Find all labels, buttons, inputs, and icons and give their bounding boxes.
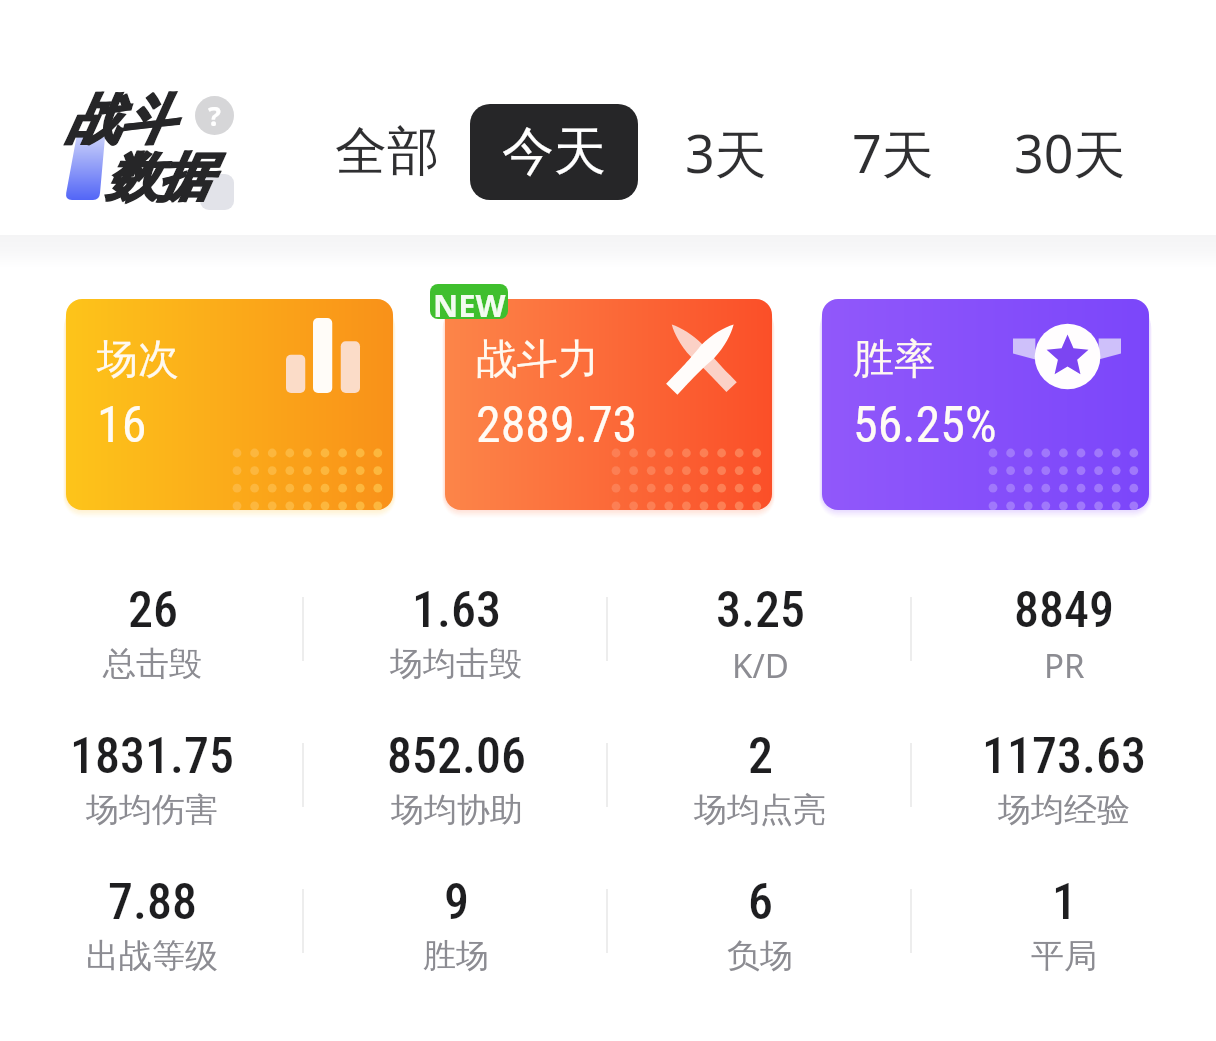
button[interactable]: 胜率 [822,299,1149,510]
staticText: 6 [748,873,773,932]
button[interactable]: Help [195,96,234,135]
staticText: 30天 [1014,117,1126,188]
staticText: 1.63 [412,581,501,640]
button[interactable]: 1831.75 [0,713,304,859]
button[interactable]: 30天 [986,104,1154,200]
button[interactable]: 场次 [66,299,393,510]
button[interactable]: 1173.63 [912,713,1216,859]
staticText: PR [1044,643,1085,688]
staticText: 负场 [727,935,793,977]
staticText: 1173.63 [982,727,1146,786]
staticText: 3.25 [716,581,805,640]
button[interactable]: 全部 [303,104,471,200]
staticText: 总击毁 [103,643,202,685]
staticText: 9 [444,873,469,932]
button[interactable]: 今天 [470,104,638,200]
staticText: 数据 [105,145,209,211]
staticText: 场均协助 [391,789,523,831]
button[interactable]: 8849 [912,567,1216,713]
staticText: 胜场 [423,935,489,977]
staticText: 26 [128,581,178,640]
button[interactable]: 3天 [642,104,810,200]
staticText: 3天 [685,117,767,188]
staticText: NEW [433,284,506,319]
button[interactable]: 2 [608,713,912,859]
staticText: 852.06 [387,727,526,786]
button[interactable]: 7天 [809,104,977,200]
staticText: 场均伤害 [86,789,218,831]
button[interactable]: 9 [304,859,608,1005]
staticText: 出战等级 [86,935,218,977]
staticText: 1831.75 [70,727,234,786]
staticText: 16 [97,396,147,455]
staticText: 场均击毁 [390,643,522,685]
staticText: K/D [732,643,789,688]
button[interactable]: 7.88 [0,859,304,1005]
button[interactable]: 852.06 [304,713,608,859]
button[interactable]: 26 [0,567,304,713]
staticText: 场均点亮 [694,789,826,831]
button[interactable]: 1 [912,859,1216,1005]
button[interactable]: 1.63 [304,567,608,713]
staticText: 数据 [106,145,210,211]
button[interactable]: 6 [608,859,912,1005]
staticText: 场次 [97,334,179,386]
staticText: ? [208,97,221,134]
button[interactable]: 3.25 [608,567,912,713]
staticText: 战斗 [67,87,173,154]
staticText: 2889.73 [476,396,638,455]
staticText: 7天 [852,117,934,188]
staticText: 全部 [335,119,439,185]
staticText: 1 [1052,873,1077,932]
staticText: 56.25% [853,396,997,455]
staticText: 2 [748,727,773,786]
staticText: 今天 [502,119,606,185]
staticText: 7.88 [108,873,197,932]
button[interactable]: 战斗力 [445,299,772,510]
staticText: 8849 [1014,581,1114,640]
staticText: 胜率 [853,334,935,386]
staticText: 平局 [1031,935,1097,977]
staticText: 战斗力 [476,334,599,386]
staticText: 战斗 [66,87,172,154]
staticText: 场均经验 [998,789,1130,831]
